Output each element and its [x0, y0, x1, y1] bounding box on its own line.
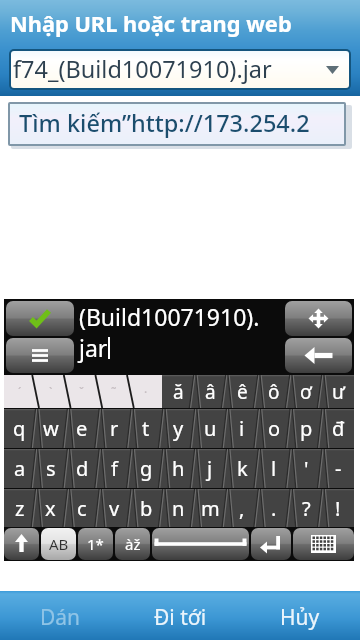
button[interactable]: ơ — [290, 375, 322, 408]
staticText: m — [201, 495, 220, 522]
button[interactable]: ă — [162, 375, 194, 408]
button[interactable]: u — [194, 409, 226, 448]
staticText: ˋ — [49, 384, 53, 400]
button[interactable]: ! — [322, 489, 354, 527]
staticText: y — [173, 415, 184, 442]
button[interactable]: o — [258, 409, 290, 448]
button[interactable]: f74_(Build10071910).jar — [11, 51, 349, 88]
staticText: ˇ — [79, 384, 85, 400]
staticText: g — [140, 455, 153, 482]
button[interactable]: w — [35, 409, 66, 448]
button[interactable]: g — [130, 449, 162, 488]
staticText: Tìm kiếm”http://173.254.2 — [19, 107, 310, 139]
staticText: s — [46, 455, 56, 482]
staticText: o — [268, 415, 281, 442]
staticText: n — [172, 495, 185, 522]
staticText: t — [142, 415, 150, 442]
staticText: 1* — [87, 534, 104, 554]
button[interactable]: k — [226, 449, 258, 488]
staticText: i — [239, 415, 245, 442]
staticText: q — [13, 415, 26, 442]
button[interactable]: Move — [285, 301, 352, 336]
button[interactable]: â — [194, 375, 226, 408]
button[interactable]: Dán — [0, 591, 120, 640]
staticText: h — [172, 455, 185, 482]
button[interactable]: Enter — [251, 528, 291, 560]
button[interactable]: n — [162, 489, 194, 527]
button[interactable]: p — [290, 409, 322, 448]
staticText: u — [204, 415, 217, 442]
button[interactable]: ? — [290, 489, 322, 527]
staticText: ? — [302, 495, 311, 522]
staticText: Dán — [40, 603, 81, 632]
button[interactable]: Tìm kiếm”http://173.254.2 — [10, 104, 344, 144]
button[interactable]: ư — [322, 375, 354, 408]
button[interactable]: đ — [322, 409, 354, 448]
staticText: · — [144, 384, 148, 400]
button[interactable]: ˇ — [66, 375, 98, 408]
staticText: Nhập URL hoặc trang web — [10, 9, 292, 39]
staticText: x — [45, 495, 56, 522]
button[interactable]: 1* — [78, 528, 113, 560]
button[interactable]: ' — [290, 449, 322, 488]
button[interactable]: . — [258, 489, 290, 527]
staticText: . — [271, 495, 277, 522]
staticText: r — [110, 415, 119, 442]
button[interactable]: Shift — [4, 528, 39, 560]
staticText: jar — [79, 332, 108, 363]
button[interactable]: c — [66, 489, 98, 527]
button[interactable]: d — [66, 449, 98, 488]
staticText: , — [239, 495, 245, 522]
button[interactable]: Space — [152, 528, 249, 560]
button[interactable]: · — [130, 375, 162, 408]
staticText: ă — [173, 379, 184, 405]
button[interactable]: r — [98, 409, 130, 448]
button[interactable]: x — [35, 489, 66, 527]
button[interactable]: , — [226, 489, 258, 527]
button[interactable]: z — [4, 489, 35, 527]
button[interactable]: Đi tới — [120, 591, 240, 640]
staticText: ˜ — [111, 384, 117, 400]
button[interactable]: l — [258, 449, 290, 488]
staticText: c — [77, 495, 87, 522]
button[interactable]: ê — [226, 375, 258, 408]
button[interactable]: i — [226, 409, 258, 448]
button[interactable]: e — [66, 409, 98, 448]
button[interactable]: AB — [41, 528, 76, 560]
staticText: ˊ — [18, 384, 22, 400]
button[interactable]: Hide keyboard — [293, 528, 354, 560]
staticText: ơ — [300, 379, 312, 405]
staticText: l — [271, 455, 277, 482]
staticText: ' — [304, 455, 309, 482]
button[interactable]: s — [35, 449, 66, 488]
button[interactable]: y — [162, 409, 194, 448]
staticText: k — [237, 455, 248, 482]
button[interactable]: àž — [115, 528, 150, 560]
staticText: w — [43, 415, 59, 442]
button[interactable]: ˋ — [35, 375, 66, 408]
button[interactable]: ˜ — [98, 375, 130, 408]
button[interactable]: v — [98, 489, 130, 527]
staticText: b — [140, 495, 153, 522]
button[interactable]: j — [194, 449, 226, 488]
button[interactable]: ô — [258, 375, 290, 408]
button[interactable]: t — [130, 409, 162, 448]
other: Open list — [326, 66, 339, 74]
staticText: (Build10071910). — [79, 301, 260, 332]
staticText: f — [111, 455, 118, 482]
button[interactable]: q — [4, 409, 35, 448]
button[interactable]: m — [194, 489, 226, 527]
button[interactable]: a — [4, 449, 35, 488]
button[interactable]: h — [162, 449, 194, 488]
button[interactable]: f — [98, 449, 130, 488]
button[interactable]: Accept — [6, 301, 74, 336]
staticText: j — [207, 455, 213, 482]
button[interactable]: Backspace — [285, 338, 352, 373]
button[interactable]: ˊ — [4, 375, 35, 408]
button[interactable]: b — [130, 489, 162, 527]
button[interactable]: - — [322, 449, 354, 488]
button[interactable]: Hủy — [240, 591, 360, 640]
staticText: ô — [268, 379, 280, 405]
staticText: ê — [237, 379, 248, 405]
button[interactable]: Menu — [6, 338, 74, 373]
